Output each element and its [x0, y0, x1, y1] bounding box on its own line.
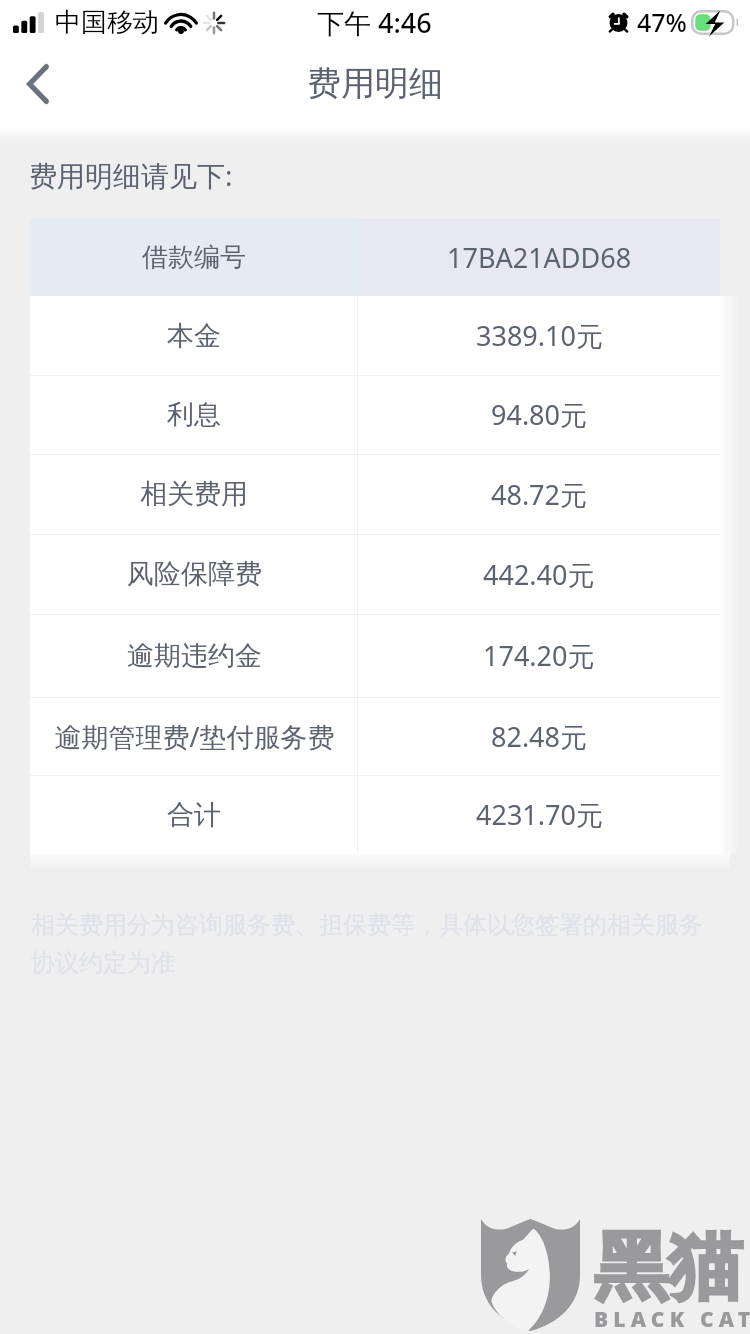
staticText: 47%	[637, 5, 687, 39]
staticText: 17BA21ADD68	[447, 239, 632, 276]
staticText: 下午 4:46	[317, 4, 432, 41]
staticText: 本金	[167, 319, 221, 353]
staticText: 4231.70元	[476, 796, 603, 833]
staticText: 逾期违约金	[127, 639, 262, 673]
staticText: 94.80元	[491, 396, 588, 433]
staticText: 相关费用	[140, 477, 248, 511]
staticText: 82.48元	[491, 718, 588, 755]
staticText: 协议约定为准	[31, 948, 175, 978]
staticText: 48.72元	[491, 476, 588, 513]
staticText: 逾期管理费/垫付服务费	[54, 718, 335, 755]
button[interactable]: Back	[4, 50, 72, 118]
staticText: 合计	[167, 798, 221, 832]
staticText: 174.20元	[483, 637, 595, 674]
staticText: 442.40元	[483, 556, 595, 593]
staticText: 借款编号	[142, 241, 246, 274]
staticText: BLACK CAT	[594, 1305, 750, 1334]
staticText: 费用明细请见下:	[29, 156, 233, 194]
staticText: 利息	[167, 398, 221, 432]
staticText: 3389.10元	[476, 317, 603, 354]
staticText: 中国移动	[55, 6, 159, 39]
staticText: 风险保障费	[127, 557, 262, 591]
staticText: 相关费用分为咨询服务费、担保费等，具体以您签署的相关服务	[31, 910, 703, 940]
staticText: 黑猫	[594, 1221, 742, 1314]
staticText: 费用明细	[307, 62, 443, 105]
